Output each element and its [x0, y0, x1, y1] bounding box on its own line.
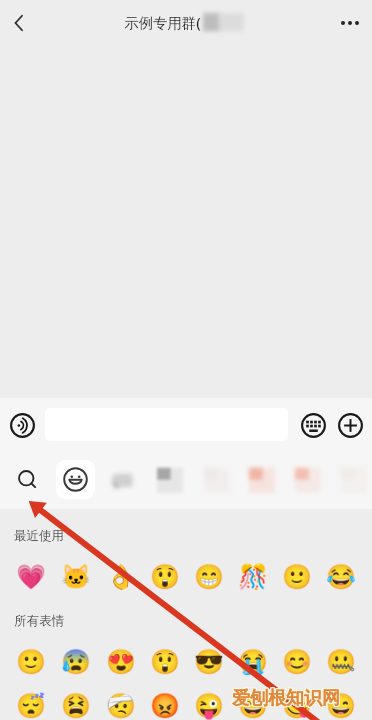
staticText: 🐱: [61, 563, 91, 591]
staticText: 🙂: [282, 563, 312, 591]
staticText: 示例专用群(: [124, 13, 201, 33]
button[interactable]: Emoji: [187, 642, 231, 682]
staticText: 😭: [238, 648, 268, 676]
staticText: 最近使用: [14, 528, 64, 544]
button[interactable]: Emoji: [53, 557, 98, 597]
staticText: 所有表情: [14, 613, 64, 629]
button[interactable]: Emoji: [98, 686, 143, 720]
button[interactable]: Emoji: [8, 642, 53, 682]
button[interactable]: Emoji: [53, 642, 98, 682]
button[interactable]: Emoji: [231, 642, 275, 682]
button[interactable]: Emoji: [8, 686, 53, 720]
button[interactable]: Emoji: [275, 557, 319, 597]
staticText: 爱刨根知识网: [232, 686, 340, 709]
staticText: 😎: [194, 648, 224, 676]
button[interactable]: Emoji: [231, 686, 275, 720]
staticText: 😂: [326, 563, 356, 591]
staticText: 😁: [194, 563, 224, 591]
staticText: 👌: [106, 563, 136, 591]
staticText: 😫: [61, 692, 91, 720]
staticText: 爱刨根知识网: [233, 688, 341, 711]
staticText: 😅: [238, 692, 268, 720]
button[interactable]: Sticker pack: [288, 460, 328, 500]
button[interactable]: Search emoji: [9, 461, 47, 499]
staticText: 爱刨根知识网: [231, 687, 339, 710]
button[interactable]: Emoji: [98, 557, 143, 597]
button[interactable]: Emoji: [143, 686, 187, 720]
staticText: 🤐: [326, 648, 356, 676]
button[interactable]: Sticker pack: [197, 460, 237, 500]
button[interactable]: Emoji: [56, 460, 95, 499]
staticText: 🤕: [106, 692, 136, 720]
staticText: 😲: [150, 648, 180, 676]
staticText: 😄: [326, 692, 356, 720]
button[interactable]: Sticker pack: [242, 460, 282, 500]
staticText: 🎊: [238, 563, 268, 591]
staticText: 爱刨根知识网: [232, 687, 340, 710]
staticText: 爱刨根知识网: [233, 687, 341, 710]
button[interactable]: Keyboard: [295, 407, 331, 443]
staticText: 😍: [106, 648, 136, 676]
button[interactable]: Emoji: [53, 686, 98, 720]
button[interactable]: Emoji: [143, 557, 187, 597]
button[interactable]: Emoji: [319, 642, 363, 682]
button[interactable]: Emoji: [275, 642, 319, 682]
button[interactable]: Voice input: [4, 407, 40, 443]
button[interactable]: Emoji: [8, 557, 53, 597]
staticText: 爱刨根知识网: [233, 686, 341, 709]
staticText: 😋: [282, 692, 312, 720]
button[interactable]: Emoji: [275, 686, 319, 720]
button[interactable]: Emoji: [319, 557, 363, 597]
button[interactable]: Emoji: [143, 642, 187, 682]
staticText: 😰: [61, 648, 91, 676]
button[interactable]: Emoji: [187, 686, 231, 720]
button[interactable]: More options: [328, 0, 372, 46]
staticText: 😴: [16, 692, 46, 720]
staticText: 😊: [282, 648, 312, 676]
staticText: 爱刨根知识网: [231, 688, 339, 711]
button[interactable]: More functions: [332, 407, 368, 443]
button[interactable]: Emoji: [319, 686, 363, 720]
button[interactable]: Sticker pack: [334, 460, 372, 500]
staticText: 爱刨根知识网: [232, 688, 340, 711]
button[interactable]: Emoji: [98, 642, 143, 682]
staticText: 爱刨根知识网: [231, 686, 339, 709]
staticText: 🙂: [16, 648, 46, 676]
staticText: 💗: [16, 563, 46, 591]
button[interactable]: Back: [0, 0, 42, 46]
button[interactable]: Favorite stickers: [102, 460, 142, 500]
button[interactable]: Sticker pack: [150, 460, 190, 500]
staticText: 😡: [150, 692, 180, 720]
button[interactable]: Emoji: [187, 557, 231, 597]
button[interactable]: Emoji: [231, 557, 275, 597]
staticText: 😜: [194, 692, 224, 720]
staticText: 😲: [150, 563, 180, 591]
